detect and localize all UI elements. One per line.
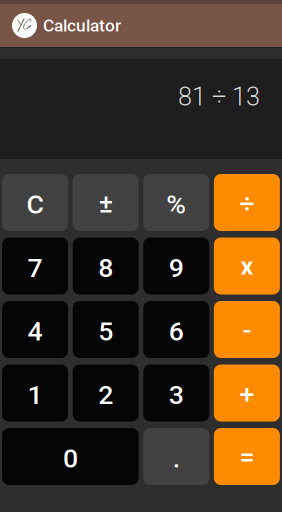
staticText: 1 (28, 379, 43, 411)
staticText: 0 (63, 443, 78, 474)
button[interactable]: 1 (2, 364, 68, 421)
staticText: + (239, 378, 254, 410)
button[interactable]: - (214, 301, 280, 358)
staticText: C (27, 189, 44, 220)
staticText: X (241, 257, 253, 279)
button[interactable]: 0 (2, 428, 139, 485)
button[interactable]: 7 (2, 237, 68, 294)
button[interactable]: 4 (2, 301, 68, 358)
button[interactable]: X (214, 237, 280, 294)
staticText: 3 (169, 379, 184, 411)
staticText: 81 ÷ 13 (178, 82, 260, 112)
button[interactable]: 5 (73, 301, 139, 358)
staticText: = (239, 442, 254, 473)
button[interactable]: . (143, 428, 209, 485)
button[interactable]: ± (73, 174, 139, 231)
staticText: % (166, 189, 186, 220)
button[interactable]: 2 (73, 364, 139, 421)
button[interactable]: 3 (143, 364, 209, 421)
staticText: 9 (169, 252, 184, 284)
staticText: YC (17, 16, 32, 35)
staticText: 7 (28, 252, 43, 284)
staticText: ÷ (239, 188, 254, 219)
button[interactable]: = (214, 428, 280, 485)
staticText: 6 (169, 316, 184, 347)
button[interactable]: + (214, 364, 280, 421)
staticText: 2 (98, 379, 113, 411)
staticText: Calculator (43, 15, 121, 36)
button[interactable]: % (143, 174, 209, 231)
button[interactable]: ÷ (214, 174, 280, 231)
staticText: ± (99, 188, 113, 219)
staticText: 5 (98, 316, 113, 347)
staticText: - (242, 315, 251, 346)
staticText: 4 (28, 316, 43, 347)
staticText: 8 (98, 252, 113, 284)
button[interactable]: C (2, 174, 68, 231)
button[interactable]: 6 (143, 301, 209, 358)
staticText: . (173, 443, 180, 474)
button[interactable]: 9 (143, 237, 209, 294)
button[interactable]: 8 (73, 237, 139, 294)
